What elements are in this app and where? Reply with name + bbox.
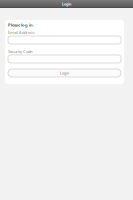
staticText: Email Address: [8,30,35,35]
staticText: Security Code: [8,49,33,54]
staticText: Login [60,70,69,75]
button[interactable]: Login [8,69,121,77]
staticText: Please log in. [8,22,34,28]
staticText: Login [62,1,71,7]
